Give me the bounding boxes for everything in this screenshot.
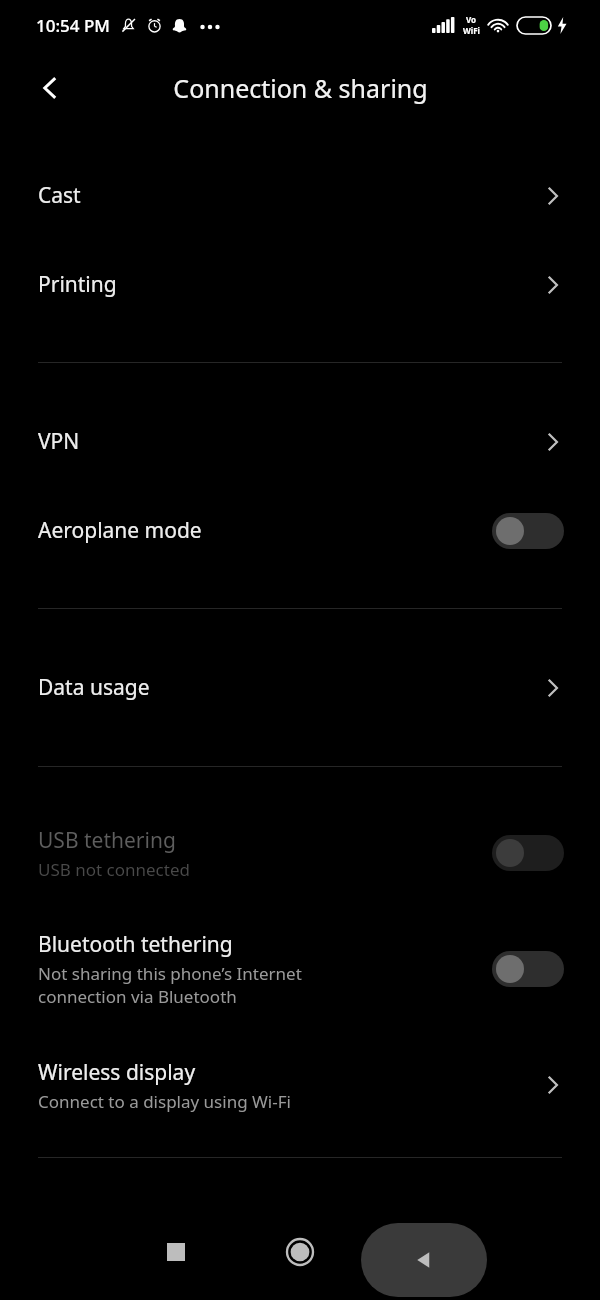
staticText: Data usage (38, 673, 150, 702)
staticText: Wireless display (38, 1058, 196, 1087)
button[interactable]: Toggle (492, 835, 564, 871)
staticText: WiFi (463, 25, 480, 36)
staticText: Vo (466, 14, 477, 25)
staticText: 10:54 PM (36, 14, 110, 37)
button[interactable]: Toggle (492, 513, 564, 549)
button[interactable]: Toggle (492, 951, 564, 987)
staticText: USB not connected (38, 858, 190, 881)
staticText: Bluetooth tethering (38, 930, 233, 959)
button[interactable]: Aeroplane mode (0, 486, 600, 575)
staticText: Aeroplane mode (38, 516, 202, 545)
button[interactable]: Back (361, 1223, 487, 1297)
staticText: Not sharing this phone’s Internet connec… (38, 962, 302, 1008)
button[interactable]: Recent apps (146, 1216, 206, 1276)
button[interactable]: Wireless display (0, 1035, 600, 1135)
staticText: Printing (38, 270, 117, 299)
button[interactable]: VPN (0, 397, 600, 486)
button[interactable]: Home (270, 1216, 330, 1276)
button[interactable]: Bluetooth tethering (0, 902, 600, 1035)
staticText: VPN (38, 427, 80, 456)
button[interactable]: Back (22, 60, 78, 116)
staticText: Cast (38, 181, 81, 210)
button[interactable]: Cast (0, 151, 600, 240)
button[interactable]: Data usage (0, 643, 600, 732)
staticText: Connect to a display using Wi-Fi (38, 1090, 291, 1113)
button[interactable]: USB tethering (0, 804, 600, 902)
staticText: USB tethering (38, 826, 176, 855)
button[interactable]: Printing (0, 240, 600, 329)
staticText: Connection & sharing (173, 71, 428, 105)
